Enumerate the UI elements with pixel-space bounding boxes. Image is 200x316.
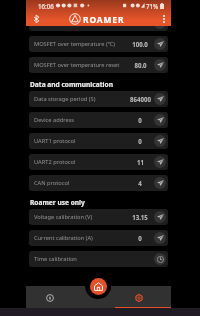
staticText: 0 <box>138 116 142 124</box>
staticText: Roamer use only <box>30 198 85 207</box>
staticText: MOSFET over temperature reset <box>34 61 120 69</box>
button[interactable]: Send <box>154 135 166 147</box>
button[interactable]: Current calibration (A) <box>29 230 168 246</box>
button[interactable]: Send <box>154 38 166 50</box>
staticText: Current calibration (A) <box>34 234 93 242</box>
button[interactable]: Data storage period (S) <box>29 91 168 107</box>
staticText: 0 <box>138 234 142 242</box>
button[interactable]: More options <box>158 13 169 24</box>
button[interactable]: UART1 protocol <box>29 133 168 149</box>
staticText: UART2 protocol <box>34 158 76 166</box>
button[interactable]: Settings <box>115 286 171 309</box>
button[interactable]: Send <box>154 93 166 105</box>
button[interactable]: Calibrate time <box>154 253 166 265</box>
button[interactable]: MOSFET over temperature reset <box>29 57 168 73</box>
staticText: 16:06 <box>38 2 54 10</box>
staticText: 864000 <box>130 95 151 103</box>
staticText: Voltage calibration (V) <box>34 213 93 221</box>
staticText: 80.0 <box>134 61 147 69</box>
button[interactable]: Send <box>154 114 166 126</box>
button[interactable]: Send <box>154 26 166 29</box>
button[interactable]: CAN protocol <box>29 175 168 191</box>
button[interactable]: UART2 protocol <box>29 154 168 170</box>
button[interactable]: Send <box>154 177 166 189</box>
button[interactable]: MOSFET under temperature (℃) <box>29 26 168 31</box>
button[interactable]: Home <box>90 278 107 295</box>
staticText: 13.15 <box>132 213 148 221</box>
staticText: 0 <box>138 137 142 145</box>
button[interactable]: Send <box>154 211 166 223</box>
staticText: Device address <box>34 116 75 124</box>
staticText: Data storage period (S) <box>34 95 96 103</box>
button[interactable]: Info <box>26 286 74 309</box>
staticText: 4 <box>138 179 142 187</box>
button[interactable]: MOSFET over temperature (℃) <box>29 36 168 52</box>
button[interactable]: Bluetooth <box>31 13 42 24</box>
staticText: Time calibration <box>34 255 77 263</box>
button[interactable]: Device address <box>29 112 168 128</box>
staticText: MOSFET over temperature (℃) <box>34 40 116 48</box>
button[interactable]: Send <box>154 59 166 71</box>
button[interactable]: Voltage calibration (V) <box>29 209 168 225</box>
staticText: 11 <box>137 158 144 166</box>
button[interactable]: Send <box>154 156 166 168</box>
button[interactable]: Time calibration <box>29 251 168 267</box>
staticText: Data and communication <box>30 80 113 89</box>
button[interactable]: Send <box>154 232 166 244</box>
staticText: ROAMER <box>83 14 125 25</box>
staticText: 100.0 <box>132 40 148 48</box>
staticText: CAN protocol <box>34 179 70 187</box>
staticText: 71% <box>146 2 159 10</box>
staticText: UART1 protocol <box>34 137 76 145</box>
